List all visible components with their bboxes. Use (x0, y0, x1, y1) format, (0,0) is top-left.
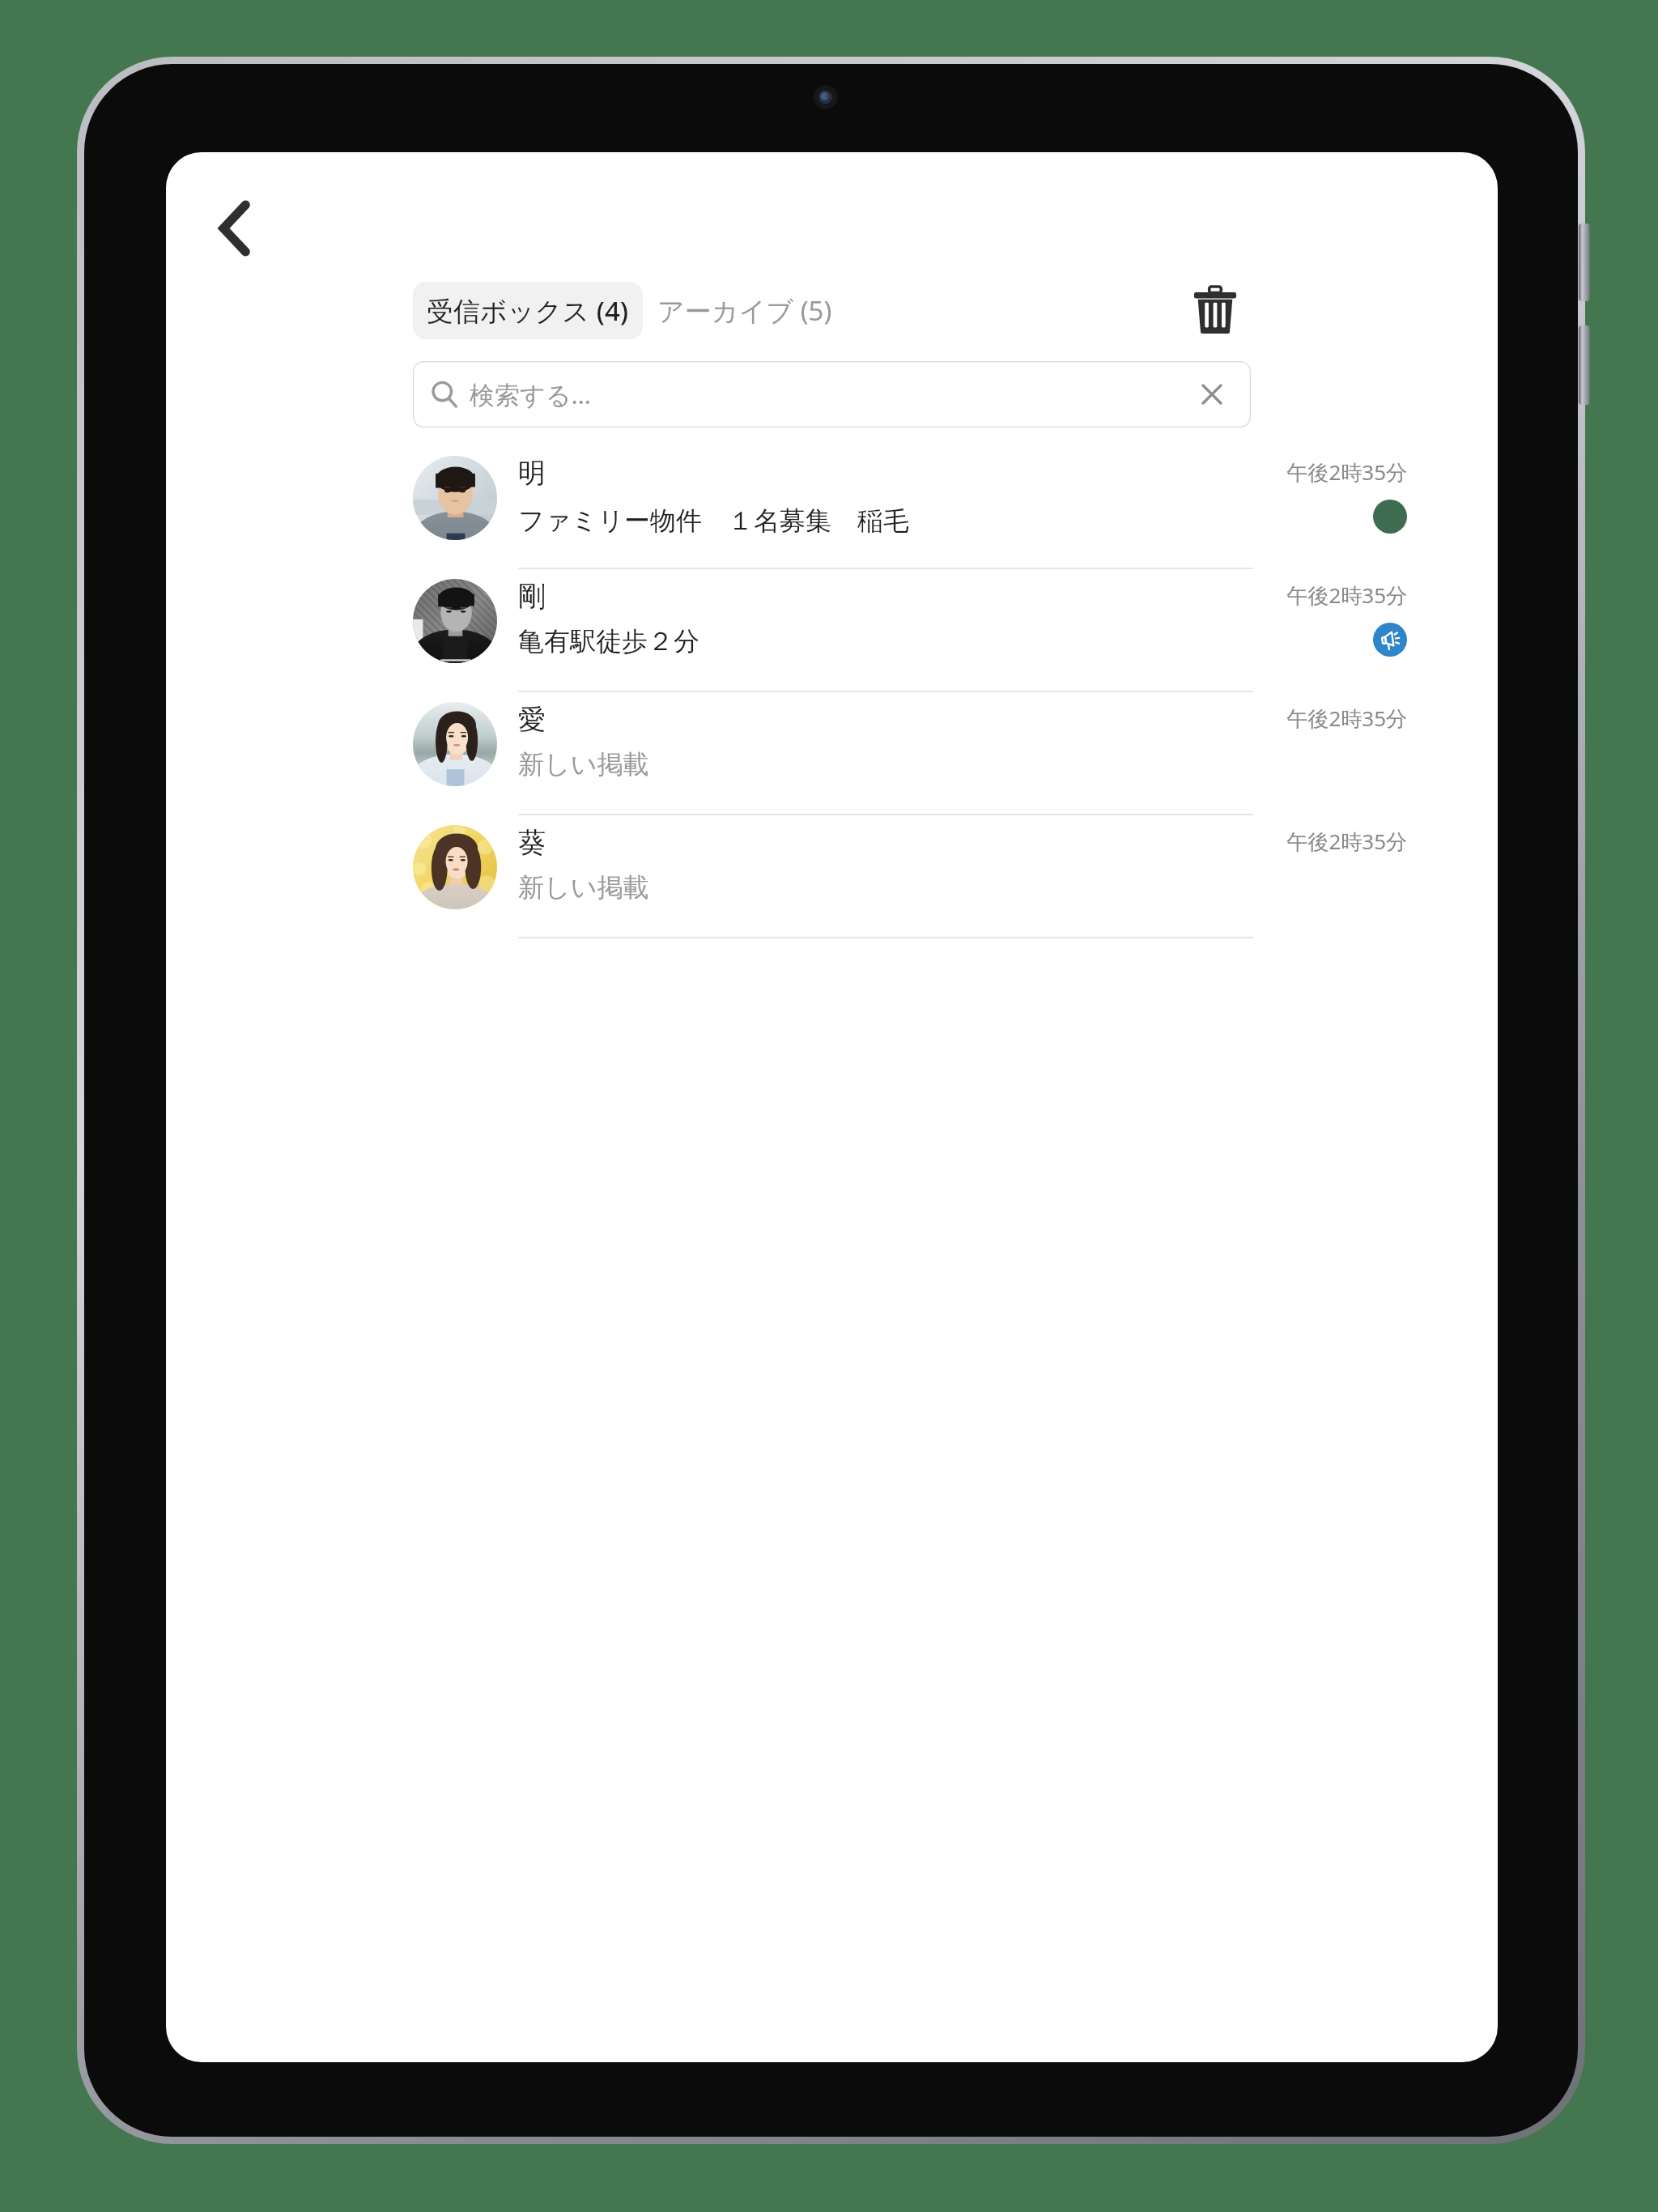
staticText: 愛 (518, 702, 546, 737)
staticText: 明 (518, 456, 546, 491)
button[interactable]: Clear search (1191, 373, 1233, 415)
staticText: 亀有駅徒歩２分 (518, 625, 699, 657)
button[interactable]: Delete (1180, 279, 1251, 341)
staticText: 午後2時35分 (1286, 827, 1407, 856)
staticText: 受信ボックス (4) (427, 292, 629, 329)
button[interactable]: 愛 (166, 692, 1498, 815)
staticText: アーカイブ (5) (657, 292, 832, 329)
staticText: 新しい掲載 (518, 871, 649, 904)
button[interactable]: 明 (166, 446, 1498, 569)
staticText: 葵 (518, 825, 546, 860)
staticText: 新しい掲載 (518, 748, 649, 781)
button[interactable]: 検索する… (413, 361, 1251, 428)
staticText: 検索する… (470, 377, 591, 411)
button[interactable]: 葵 (166, 815, 1498, 938)
staticText: 剛 (518, 579, 546, 614)
staticText: 午後2時35分 (1286, 704, 1407, 733)
staticText: ファミリー物件 １名募集 稲毛 (518, 502, 909, 538)
button[interactable]: Back (189, 181, 283, 275)
button[interactable]: 剛 (166, 569, 1498, 692)
button[interactable]: 受信ボックス (4) (413, 282, 643, 339)
staticText: 午後2時35分 (1286, 581, 1407, 610)
staticText: 午後2時35分 (1286, 457, 1407, 487)
button[interactable]: アーカイブ (5) (648, 282, 842, 339)
